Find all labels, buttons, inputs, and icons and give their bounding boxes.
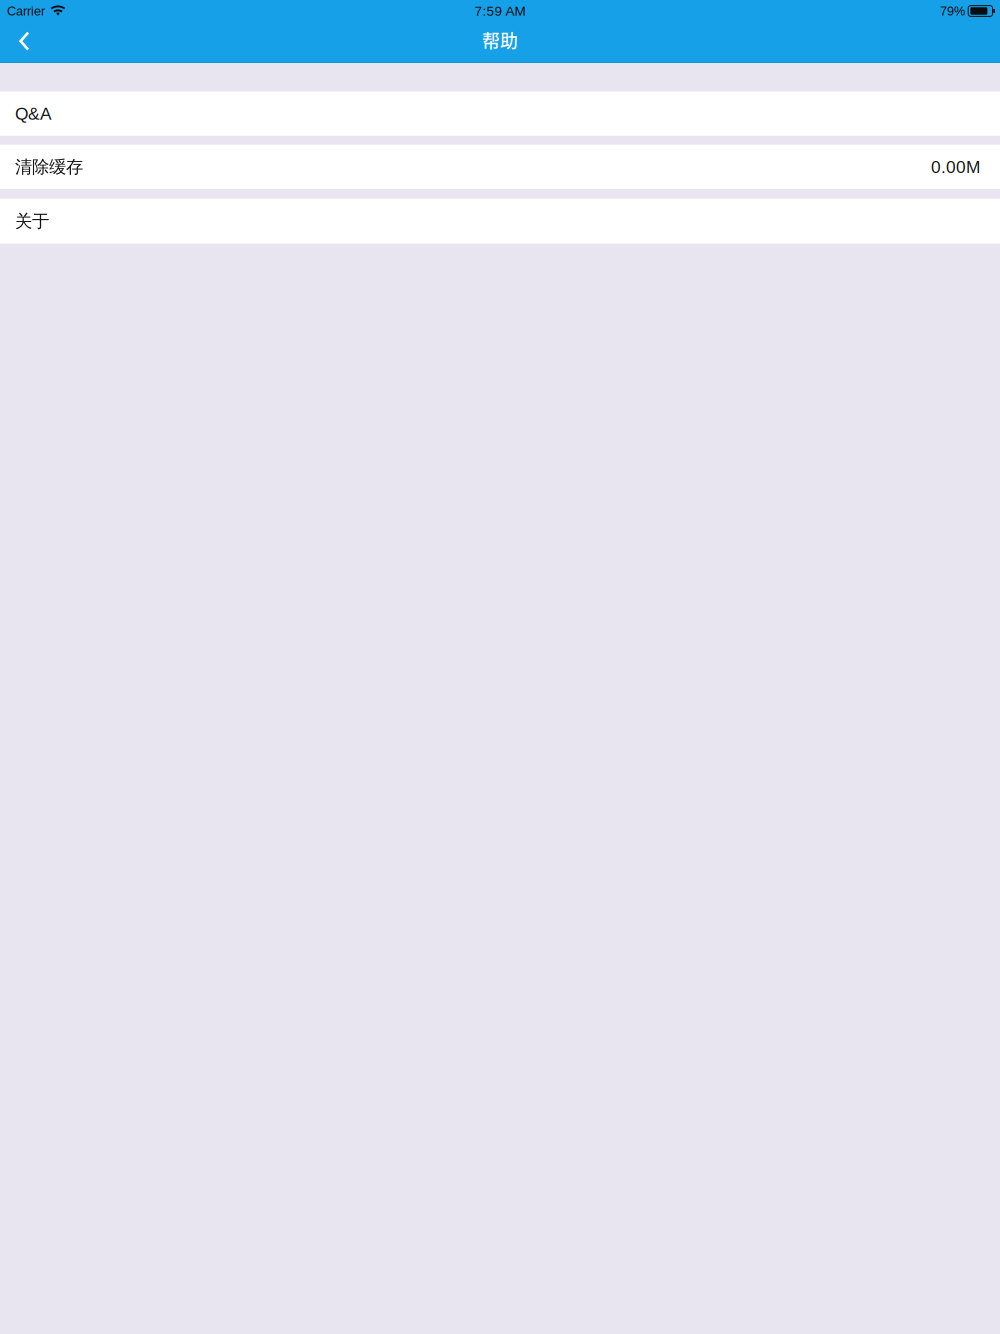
staticText: 79% <box>940 4 965 18</box>
button[interactable]: 清除缓存 <box>0 145 1000 189</box>
staticText: 7:59 AM <box>474 3 525 19</box>
button[interactable]: Q&A <box>0 91 1000 136</box>
button[interactable]: 关于 <box>0 199 1000 244</box>
staticText: Carrier <box>7 4 45 18</box>
staticText: 清除缓存 <box>15 156 83 178</box>
staticText: Q&A <box>15 104 52 123</box>
button[interactable]: Back <box>0 21 50 62</box>
staticText: 0.00M <box>931 157 980 177</box>
staticText: 帮助 <box>482 27 518 53</box>
staticText: 关于 <box>15 210 49 232</box>
